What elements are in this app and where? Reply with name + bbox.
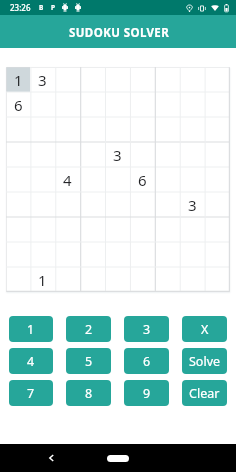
- button[interactable]: 3: [30, 67, 55, 92]
- button[interactable]: [130, 267, 155, 292]
- button[interactable]: [6, 117, 30, 142]
- button[interactable]: [180, 217, 205, 242]
- button[interactable]: [30, 242, 55, 267]
- button[interactable]: [205, 67, 230, 92]
- button[interactable]: [80, 67, 105, 92]
- button[interactable]: Back: [43, 450, 59, 466]
- button[interactable]: [205, 117, 230, 142]
- button[interactable]: [105, 67, 130, 92]
- button[interactable]: [130, 142, 155, 167]
- button[interactable]: [55, 92, 80, 117]
- button[interactable]: [155, 167, 180, 192]
- button[interactable]: [30, 92, 55, 117]
- button[interactable]: [205, 167, 230, 192]
- button[interactable]: 6: [130, 167, 155, 192]
- button[interactable]: [105, 267, 130, 292]
- button[interactable]: 9: [124, 380, 169, 406]
- staticText: Clear: [189, 385, 220, 402]
- button[interactable]: [55, 192, 80, 217]
- staticText: 3: [38, 70, 47, 90]
- button[interactable]: [55, 142, 80, 167]
- button[interactable]: [80, 192, 105, 217]
- staticText: 2: [85, 321, 93, 338]
- button[interactable]: [105, 167, 130, 192]
- button[interactable]: [30, 167, 55, 192]
- button[interactable]: [130, 67, 155, 92]
- button[interactable]: [155, 192, 180, 217]
- button[interactable]: [105, 192, 130, 217]
- button[interactable]: [80, 217, 105, 242]
- button[interactable]: [80, 267, 105, 292]
- button[interactable]: [105, 92, 130, 117]
- button[interactable]: 8: [66, 380, 111, 406]
- button[interactable]: [6, 142, 30, 167]
- button[interactable]: [130, 92, 155, 117]
- button[interactable]: [105, 117, 130, 142]
- button[interactable]: [180, 167, 205, 192]
- button[interactable]: [80, 117, 105, 142]
- button[interactable]: [6, 192, 30, 217]
- button[interactable]: 1: [30, 267, 55, 292]
- button[interactable]: [155, 142, 180, 167]
- button[interactable]: [55, 242, 80, 267]
- button[interactable]: [80, 167, 105, 192]
- button[interactable]: [205, 267, 230, 292]
- button[interactable]: [30, 217, 55, 242]
- button[interactable]: [6, 242, 30, 267]
- button[interactable]: [80, 242, 105, 267]
- button[interactable]: 3: [124, 316, 169, 342]
- button[interactable]: X: [182, 316, 227, 342]
- button[interactable]: [30, 142, 55, 167]
- button[interactable]: [80, 92, 105, 117]
- button[interactable]: [205, 92, 230, 117]
- staticText: 8: [85, 385, 93, 402]
- button[interactable]: 7: [9, 380, 53, 406]
- button[interactable]: [155, 117, 180, 142]
- button[interactable]: [80, 142, 105, 167]
- button[interactable]: 1: [6, 67, 30, 92]
- button[interactable]: [6, 267, 30, 292]
- button[interactable]: [105, 217, 130, 242]
- button[interactable]: [180, 142, 205, 167]
- button[interactable]: [155, 267, 180, 292]
- button[interactable]: 4: [9, 348, 53, 374]
- button[interactable]: [55, 217, 80, 242]
- button[interactable]: [180, 92, 205, 117]
- button[interactable]: [180, 67, 205, 92]
- button[interactable]: [155, 242, 180, 267]
- button[interactable]: Home: [107, 455, 129, 462]
- button[interactable]: [6, 217, 30, 242]
- button[interactable]: [30, 192, 55, 217]
- button[interactable]: [205, 217, 230, 242]
- button[interactable]: 3: [180, 192, 205, 217]
- button[interactable]: [180, 117, 205, 142]
- button[interactable]: [6, 167, 30, 192]
- button[interactable]: [155, 92, 180, 117]
- button[interactable]: [55, 267, 80, 292]
- button[interactable]: [130, 242, 155, 267]
- button[interactable]: [155, 217, 180, 242]
- button[interactable]: [180, 242, 205, 267]
- button[interactable]: 2: [66, 316, 111, 342]
- button[interactable]: 6: [124, 348, 169, 374]
- button[interactable]: [205, 142, 230, 167]
- button[interactable]: 4: [55, 167, 80, 192]
- button[interactable]: [105, 242, 130, 267]
- button[interactable]: [205, 242, 230, 267]
- button[interactable]: [155, 67, 180, 92]
- button[interactable]: [130, 192, 155, 217]
- button[interactable]: [30, 117, 55, 142]
- button[interactable]: [205, 192, 230, 217]
- staticText: 1: [27, 321, 35, 338]
- button[interactable]: 6: [6, 92, 30, 117]
- button[interactable]: Clear: [182, 380, 227, 406]
- button[interactable]: [130, 217, 155, 242]
- button[interactable]: 1: [9, 316, 53, 342]
- button[interactable]: [130, 117, 155, 142]
- button[interactable]: Solve: [182, 348, 227, 374]
- button[interactable]: 5: [66, 348, 111, 374]
- button[interactable]: [180, 267, 205, 292]
- button[interactable]: [55, 117, 80, 142]
- button[interactable]: [55, 67, 80, 92]
- button[interactable]: 3: [105, 142, 130, 167]
